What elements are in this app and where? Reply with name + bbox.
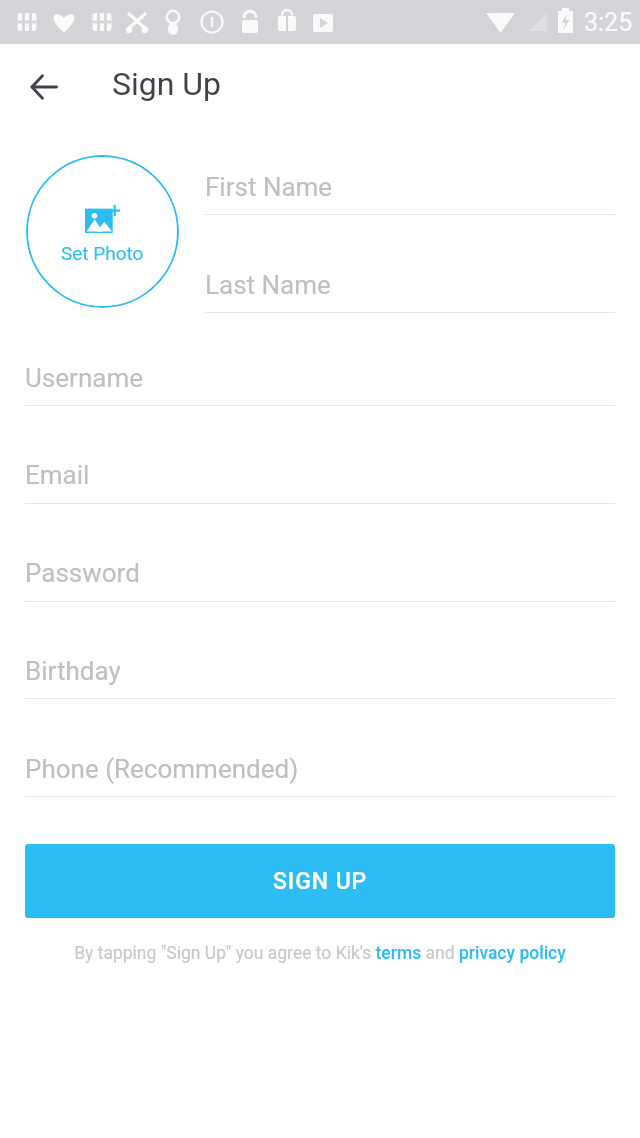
button[interactable]: Birthday [25, 648, 615, 698]
staticText: SIGN UP [273, 868, 368, 895]
staticText: First Name [205, 172, 333, 202]
button[interactable]: Back [20, 63, 68, 111]
staticText: Password [25, 558, 140, 588]
staticText: Last Name [205, 270, 331, 300]
staticText: Birthday [25, 656, 121, 686]
staticText: 3:25 [584, 8, 633, 37]
button[interactable]: Password [25, 550, 615, 600]
button[interactable]: Last Name [205, 262, 615, 312]
button[interactable]: Set Photo [26, 155, 179, 308]
button[interactable]: Phone (Recommended) [25, 746, 615, 796]
button[interactable]: Email [25, 452, 615, 502]
staticText: Set Photo [61, 242, 144, 264]
staticText: Phone (Recommended) [25, 754, 299, 784]
button[interactable]: Username [25, 355, 615, 405]
staticText: Sign Up [112, 65, 222, 103]
button[interactable]: SIGN UP [25, 844, 615, 918]
button[interactable]: By tapping "Sign Up" you agree to Kik's … [74, 943, 566, 964]
button[interactable]: First Name [205, 164, 615, 214]
staticText: Username [25, 363, 143, 393]
staticText: Email [25, 460, 90, 490]
